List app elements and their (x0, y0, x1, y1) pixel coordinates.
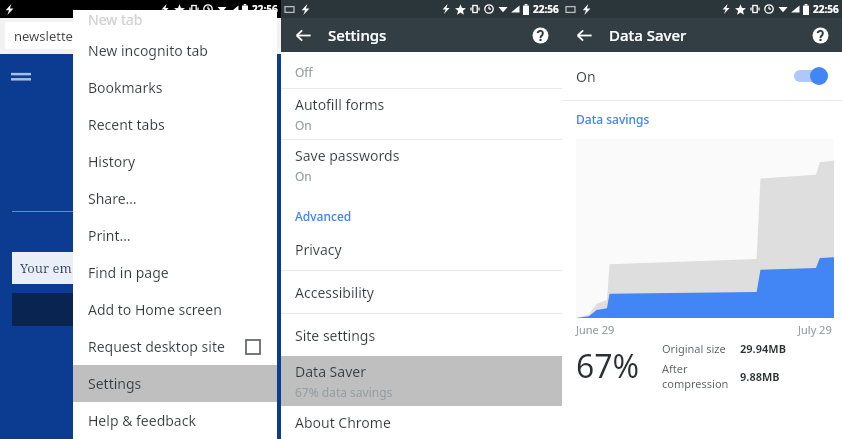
staticText: Find in page (88, 263, 169, 282)
staticText: Request desktop site (88, 337, 246, 356)
staticText: Help & feedback (88, 411, 196, 430)
staticText: Site settings (295, 326, 376, 345)
staticText: Privacy (295, 240, 342, 259)
staticText: New incognito tab (88, 41, 208, 60)
button[interactable]: Help & feedback (73, 402, 277, 439)
button[interactable]: Privacy (281, 228, 562, 270)
staticText: 22:56 (813, 2, 839, 16)
button[interactable]: Print… (73, 217, 277, 254)
staticText: On (295, 168, 312, 184)
staticText: 22:56 (252, 2, 278, 16)
staticText: Data savings (576, 111, 650, 127)
staticText: 29.94MB (740, 341, 786, 356)
button[interactable]: Save passwords (281, 140, 562, 190)
staticText: 9.88MB (740, 369, 780, 384)
button[interactable]: Your em (12, 252, 90, 284)
button[interactable]: On (562, 52, 842, 100)
staticText: Data Saver (295, 362, 366, 381)
staticText: Data Saver (609, 25, 687, 45)
staticText: On (295, 117, 312, 133)
button[interactable]: Recent tabs (73, 106, 277, 143)
staticText: June 29 (576, 322, 615, 337)
button[interactable]: newsletter. (5, 22, 276, 49)
staticText: 67% data savings (295, 384, 393, 400)
staticText: After compression (662, 361, 740, 391)
staticText: Bookmarks (88, 78, 163, 97)
button[interactable]: Settings (73, 365, 277, 402)
button[interactable]: Autofill forms (281, 89, 562, 139)
staticText: Settings (88, 374, 142, 393)
button[interactable]: Accessibility (281, 271, 562, 313)
button[interactable]: Back (289, 21, 317, 49)
button[interactable]: New tab (73, 10, 277, 32)
button[interactable]: Find in page (73, 254, 277, 291)
staticText: History (88, 152, 136, 171)
staticText: 22:56 (533, 2, 559, 16)
staticText: Recent tabs (88, 115, 165, 134)
button[interactable]: New incognito tab (73, 32, 277, 69)
button[interactable]: History (73, 143, 277, 180)
staticText: Save passwords (295, 146, 400, 165)
button[interactable]: Site settings (281, 314, 562, 356)
staticText: About Chrome (295, 413, 391, 432)
button[interactable]: Share… (73, 180, 277, 217)
staticText: 67% (576, 344, 640, 388)
button[interactable]: Help (526, 21, 554, 49)
staticText: Print… (88, 226, 131, 245)
button[interactable]: Help (806, 21, 834, 49)
staticText: Accessibility (295, 283, 374, 302)
staticText: Original size (662, 341, 740, 356)
staticText: Your em (20, 259, 72, 277)
staticText: July 29 (798, 322, 832, 337)
button[interactable]: Data Saver (281, 356, 562, 406)
button[interactable] (12, 293, 90, 326)
button[interactable]: Add to Home screen (73, 291, 277, 328)
staticText: Settings (328, 25, 387, 45)
button[interactable]: Back (570, 21, 598, 49)
staticText: Add to Home screen (88, 300, 222, 319)
staticText: Advanced (295, 208, 352, 224)
button[interactable]: Off (281, 52, 562, 88)
staticText: On (576, 67, 794, 86)
button[interactable]: Request desktop site (73, 328, 277, 365)
button[interactable]: Bookmarks (73, 69, 277, 106)
staticText: New tab (88, 10, 143, 29)
staticText: newsletter. (14, 27, 80, 45)
button[interactable]: Menu (11, 70, 31, 83)
button[interactable]: About Chrome (281, 406, 562, 439)
staticText: Autofill forms (295, 95, 385, 114)
staticText: Off (295, 64, 313, 80)
staticText: Share… (88, 189, 137, 208)
